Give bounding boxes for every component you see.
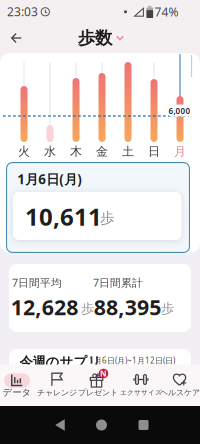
staticText: 74%	[154, 4, 178, 20]
staticText: 歩	[161, 300, 174, 317]
staticText: 火	[18, 144, 30, 159]
staticText: 10,611	[25, 201, 102, 232]
staticText: 12,628	[11, 293, 78, 321]
staticText: 木	[70, 144, 82, 159]
staticText: 1月6日(月)~1月12日(日)	[89, 355, 175, 366]
staticText: 1月6日(月)	[17, 170, 82, 188]
staticText: 歩	[81, 300, 94, 317]
button[interactable]: チャレンジ	[37, 364, 77, 405]
button[interactable]: Home	[96, 419, 107, 430]
button[interactable]: Back	[55, 419, 65, 431]
staticText: 歩	[100, 209, 115, 227]
button[interactable]: Recents	[138, 420, 148, 430]
staticText: 金	[96, 144, 108, 159]
staticText: データ	[2, 387, 31, 398]
staticText: 歩数	[78, 27, 112, 49]
staticText: 7日間累計	[93, 275, 143, 290]
staticText: 7日間平均	[12, 275, 62, 290]
button[interactable]: エクササイズ	[121, 364, 161, 405]
button[interactable]: Back	[6, 28, 27, 48]
staticText: チャレンジ	[37, 388, 77, 397]
button[interactable]: 1月6日(月)	[6, 162, 190, 253]
button[interactable]: データ	[0, 364, 38, 405]
button[interactable]: 期間を選択	[78, 27, 124, 49]
staticText: エクササイズ	[120, 388, 162, 397]
staticText: ヘルスケア	[160, 388, 200, 397]
button[interactable]: ヘルスケア	[160, 364, 200, 405]
button[interactable]: 今週のサプリ	[9, 349, 191, 375]
staticText: 水	[44, 144, 56, 159]
staticText: 日	[148, 144, 160, 159]
staticText: 88,395	[94, 293, 161, 321]
staticText: プレゼント	[78, 388, 118, 397]
staticText: 土	[122, 144, 134, 159]
staticText: 月	[174, 144, 186, 159]
staticText: 今週のサプリ	[19, 354, 101, 370]
staticText: N	[100, 368, 107, 379]
staticText: 6,000	[168, 106, 190, 116]
staticText: 23:03	[7, 3, 38, 19]
button[interactable]: N	[78, 364, 118, 405]
